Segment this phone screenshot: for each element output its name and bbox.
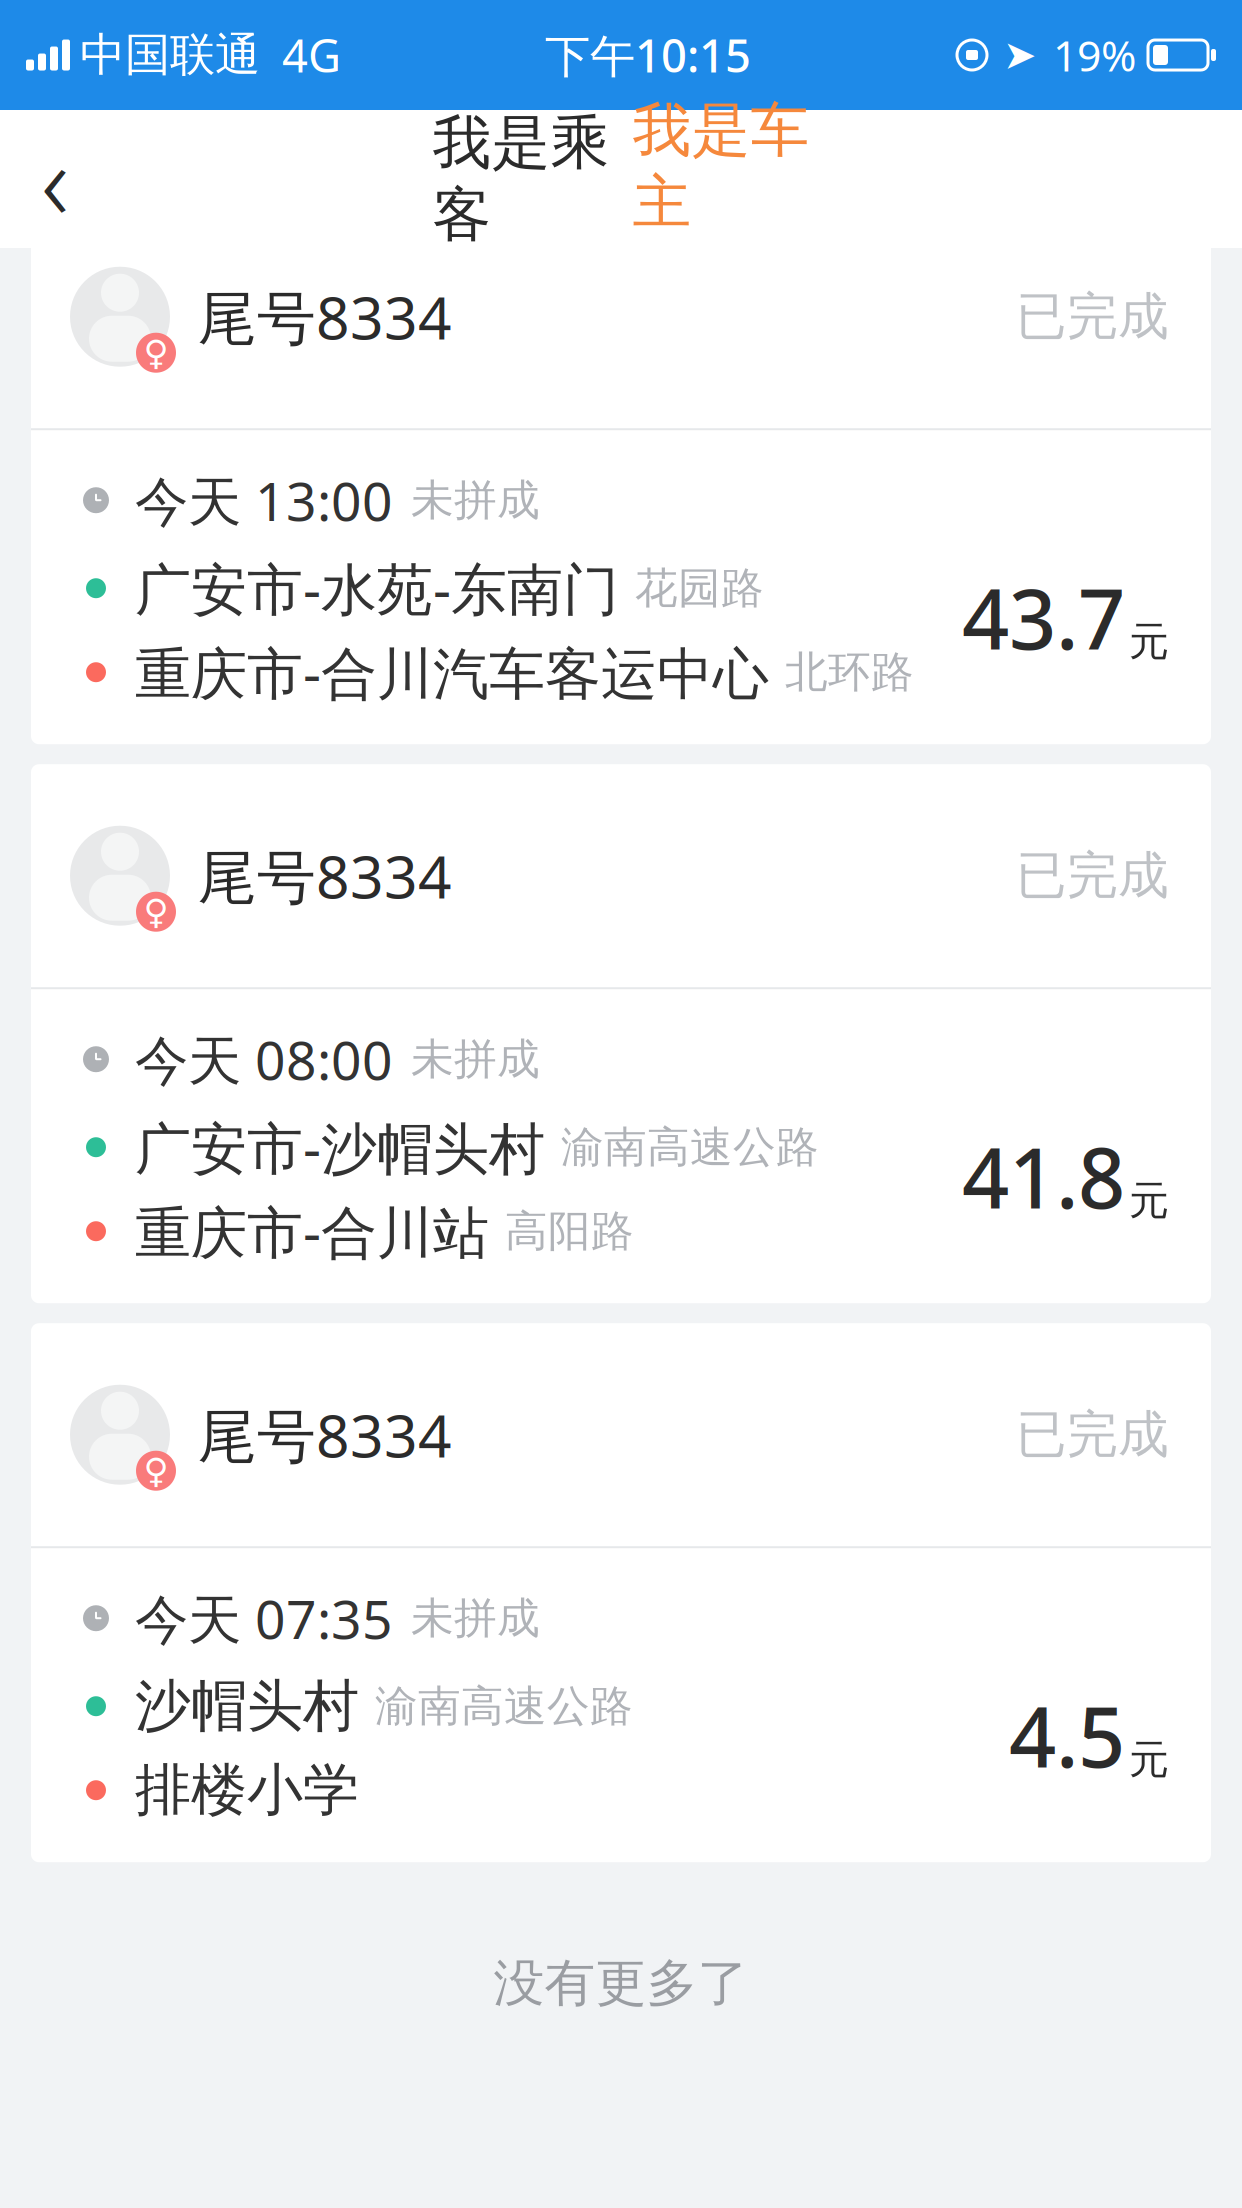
staticText: 未拼成 bbox=[411, 1033, 540, 1085]
staticText: 渝南高速公路 bbox=[375, 1680, 633, 1732]
staticText: 高阳路 bbox=[505, 1205, 634, 1257]
staticText: 未拼成 bbox=[411, 474, 540, 526]
staticText: 尾号8334 bbox=[198, 278, 452, 356]
staticText: ♀ bbox=[143, 892, 168, 931]
staticText: 我是车主 bbox=[632, 94, 809, 238]
staticText: 41.8 bbox=[962, 1121, 1125, 1231]
staticText: ➤ bbox=[1003, 32, 1037, 78]
button[interactable]: 我是乘客 bbox=[421, 110, 621, 248]
staticText: ♀ bbox=[143, 333, 168, 372]
staticText: 重庆市-合川汽车客运中心 bbox=[135, 635, 769, 709]
staticText: 已完成 bbox=[1016, 845, 1169, 907]
staticText: ♀ bbox=[143, 1451, 168, 1490]
button[interactable]: 我是车主 bbox=[621, 110, 821, 248]
staticText: 中国联通 bbox=[80, 27, 260, 83]
staticText: 今天 07:35 bbox=[135, 1583, 393, 1654]
staticText: 花园路 bbox=[635, 562, 764, 614]
staticText: 4.5 bbox=[1009, 1680, 1125, 1790]
staticText: 元 bbox=[1129, 1735, 1169, 1784]
staticText: 广安市-沙帽头村 bbox=[135, 1110, 545, 1184]
staticText: 43.7 bbox=[962, 562, 1125, 672]
staticText: 今天 13:00 bbox=[135, 465, 393, 536]
staticText: 尾号8334 bbox=[198, 837, 452, 915]
staticText: ‹ bbox=[41, 108, 69, 250]
staticText: 4G bbox=[282, 25, 341, 85]
staticText: 渝南高速公路 bbox=[561, 1121, 819, 1173]
staticText: 已完成 bbox=[1016, 286, 1169, 348]
staticText: 北环路 bbox=[785, 646, 914, 698]
staticText: 19% bbox=[1053, 27, 1136, 83]
staticText: 元 bbox=[1129, 617, 1169, 666]
staticText: 重庆市-合川站 bbox=[135, 1194, 489, 1268]
button[interactable]: ♀ bbox=[31, 1323, 1211, 1862]
staticText: 没有更多了 bbox=[493, 1952, 748, 2014]
button[interactable]: ♀ bbox=[31, 764, 1211, 1303]
button[interactable]: ♀ bbox=[31, 205, 1211, 744]
staticText: 今天 08:00 bbox=[135, 1024, 393, 1095]
staticText: 沙帽头村 bbox=[135, 1672, 359, 1741]
staticText: 元 bbox=[1129, 1176, 1169, 1225]
staticText: 未拼成 bbox=[411, 1592, 540, 1644]
button[interactable]: 返回 bbox=[0, 110, 110, 248]
staticText: 排楼小学 bbox=[135, 1756, 359, 1825]
staticText: 尾号8334 bbox=[198, 1396, 452, 1474]
staticText: 已完成 bbox=[1016, 1404, 1169, 1466]
staticText: 我是乘客 bbox=[432, 107, 609, 251]
staticText: 广安市-水苑-东南门 bbox=[135, 551, 619, 625]
staticText: 下午10:15 bbox=[545, 25, 751, 85]
